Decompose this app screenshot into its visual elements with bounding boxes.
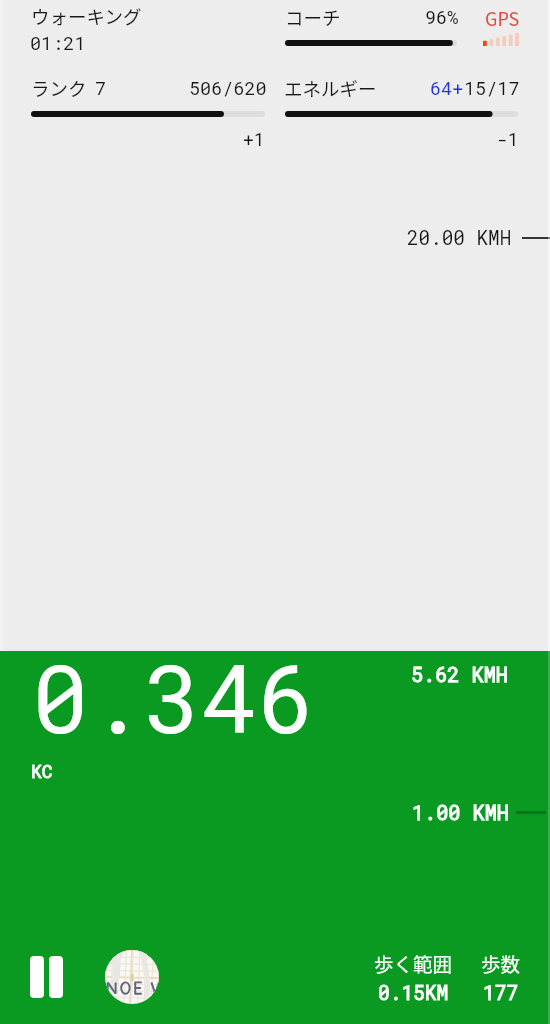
button[interactable]: 歩数 [470, 949, 532, 1006]
staticText: +1 [243, 127, 265, 151]
staticText: 1.00 KMH [412, 799, 509, 826]
button[interactable]: 歩く範囲 [365, 949, 461, 1006]
staticText: 01:21 [30, 31, 86, 55]
staticText: ランク [31, 75, 87, 102]
staticText: 7 [95, 76, 107, 100]
staticText: コーチ [285, 4, 341, 31]
staticText: 歩数 [481, 949, 521, 977]
staticText: 20.00 KMH [407, 225, 512, 250]
staticText: 177 [483, 980, 519, 1006]
staticText: 15/17 [464, 76, 520, 100]
staticText: 506/620 [189, 76, 267, 100]
staticText: 64+ [430, 76, 464, 100]
staticText: エネルギー [284, 75, 377, 102]
staticText: 96% [425, 5, 459, 29]
staticText: 5.62 KMH [411, 661, 508, 688]
staticText: -1 [497, 127, 519, 151]
staticText: GPS [485, 5, 520, 31]
staticText: 0.15KM [378, 980, 449, 1006]
button[interactable]: Open map [105, 950, 159, 1004]
staticText: 0.346 [32, 635, 315, 759]
button[interactable]: Pause workout [20, 951, 72, 1003]
staticText: KC [31, 759, 53, 783]
staticText: 歩く範囲 [374, 949, 453, 977]
staticText: ウォーキング [31, 3, 142, 30]
